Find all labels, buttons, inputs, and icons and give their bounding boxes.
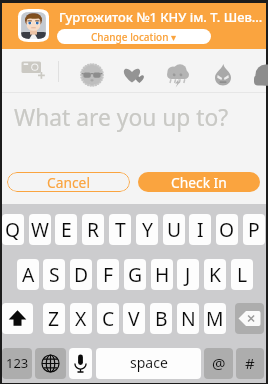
staticText: What are you up to? bbox=[14, 102, 229, 133]
staticText: Change location ▾ bbox=[91, 30, 177, 44]
button[interactable]: Sunglasses face bbox=[79, 62, 105, 88]
staticText: O bbox=[219, 216, 235, 242]
staticText: V bbox=[128, 305, 140, 331]
button[interactable]: @ bbox=[204, 348, 233, 379]
button[interactable]: E bbox=[55, 214, 77, 245]
staticText: Cancel bbox=[47, 173, 90, 192]
staticText: B bbox=[155, 305, 168, 331]
button[interactable]: X bbox=[70, 303, 92, 334]
staticText: Q bbox=[5, 216, 21, 242]
staticText: E bbox=[61, 216, 72, 242]
staticText: N bbox=[181, 305, 196, 331]
button[interactable]: Add photo bbox=[19, 60, 49, 84]
staticText: F bbox=[103, 261, 114, 287]
staticText: J bbox=[185, 261, 191, 287]
button[interactable]: Cancel bbox=[7, 172, 130, 192]
staticText: G bbox=[128, 261, 143, 287]
button[interactable]: Q bbox=[2, 214, 24, 245]
button[interactable]: # bbox=[236, 348, 264, 379]
staticText: P bbox=[248, 216, 260, 242]
staticText: M bbox=[206, 305, 224, 331]
button[interactable]: Shift bbox=[2, 303, 33, 334]
staticText: L bbox=[237, 261, 248, 287]
button[interactable]: Check In bbox=[138, 172, 260, 192]
staticText: Y bbox=[142, 216, 153, 242]
staticText: H bbox=[155, 261, 170, 287]
button[interactable]: S bbox=[43, 259, 65, 290]
button[interactable]: Flame bbox=[210, 62, 236, 88]
button[interactable]: H bbox=[151, 259, 173, 290]
button[interactable]: O bbox=[216, 214, 238, 245]
button[interactable]: I bbox=[189, 214, 211, 245]
button[interactable]: T bbox=[109, 214, 131, 245]
button[interactable]: Hearts bbox=[122, 62, 148, 88]
staticText: A bbox=[22, 261, 35, 287]
staticText: X bbox=[75, 305, 87, 331]
button[interactable]: U bbox=[163, 214, 185, 245]
button[interactable]: W bbox=[29, 214, 51, 245]
button[interactable]: C bbox=[97, 303, 119, 334]
staticText: C bbox=[102, 305, 115, 331]
staticText: D bbox=[74, 261, 89, 287]
button[interactable]: Change location ▾ bbox=[57, 29, 211, 44]
button[interactable]: B bbox=[150, 303, 172, 334]
button[interactable]: Switch keyboard bbox=[35, 348, 66, 379]
staticText: T bbox=[115, 216, 126, 242]
staticText: Гуртожиток №1 КНУ ім. Т. Шев... bbox=[59, 8, 268, 26]
button[interactable]: N bbox=[177, 303, 199, 334]
button[interactable]: A bbox=[17, 259, 39, 290]
staticText: @ bbox=[212, 353, 226, 373]
button[interactable]: Dictation bbox=[69, 348, 92, 379]
staticText: K bbox=[209, 261, 221, 287]
staticText: U bbox=[167, 216, 182, 242]
button[interactable]: L bbox=[231, 259, 253, 290]
button[interactable]: More emoji bbox=[254, 62, 268, 88]
button[interactable]: Rain cloud bbox=[165, 62, 191, 88]
button[interactable]: Y bbox=[136, 214, 158, 245]
button[interactable]: K bbox=[204, 259, 226, 290]
staticText: S bbox=[49, 261, 60, 287]
button[interactable]: F bbox=[97, 259, 119, 290]
button[interactable]: Backspace bbox=[235, 303, 264, 334]
staticText: W bbox=[31, 216, 49, 242]
button[interactable]: Z bbox=[43, 303, 65, 334]
staticText: Z bbox=[48, 305, 60, 331]
button[interactable]: 123 bbox=[2, 348, 32, 379]
button[interactable]: R bbox=[82, 214, 104, 245]
button[interactable]: V bbox=[123, 303, 145, 334]
button[interactable]: J bbox=[177, 259, 199, 290]
staticText: 123 bbox=[6, 354, 29, 372]
staticText: # bbox=[245, 353, 255, 373]
staticText: Check In bbox=[171, 173, 227, 192]
button[interactable]: M bbox=[204, 303, 226, 334]
button[interactable]: G bbox=[124, 259, 146, 290]
button[interactable]: P bbox=[243, 214, 265, 245]
button[interactable]: D bbox=[70, 259, 92, 290]
staticText: space bbox=[130, 353, 168, 372]
button[interactable]: space bbox=[96, 348, 201, 379]
staticText: R bbox=[87, 216, 100, 242]
staticText: I bbox=[197, 216, 204, 242]
